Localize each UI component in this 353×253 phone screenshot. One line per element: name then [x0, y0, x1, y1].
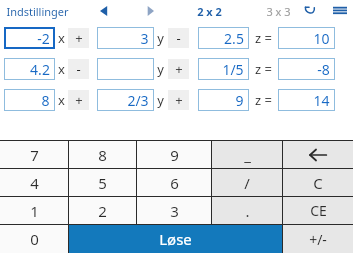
staticText: 0 [30, 229, 39, 249]
staticText: Indstillinger [6, 4, 69, 19]
button[interactable]: - [68, 59, 89, 79]
staticText: CE [310, 201, 327, 220]
staticText: + [75, 91, 83, 109]
staticText: -2 [37, 29, 50, 48]
staticText: y [157, 60, 164, 78]
button[interactable]: - [168, 28, 189, 48]
staticText: 14 [313, 91, 330, 110]
staticText: 3 x 3 [266, 4, 291, 19]
staticText: 2/3 [127, 91, 149, 110]
staticText: x [58, 91, 65, 109]
button[interactable]: 2.5 [198, 27, 249, 49]
staticText: 5 [98, 173, 107, 193]
button[interactable]: 2/3 [97, 89, 154, 111]
button[interactable]: Indstillinger [0, 2, 75, 21]
staticText: 8 [41, 91, 50, 110]
staticText: + [175, 91, 183, 109]
staticText: y [157, 29, 164, 47]
button[interactable]: 10 [278, 27, 335, 49]
button[interactable]: + [68, 90, 89, 110]
staticText: 4 [30, 173, 39, 193]
button[interactable]: . [212, 197, 282, 224]
staticText: _ [244, 145, 251, 165]
staticText: . [245, 201, 250, 221]
button[interactable]: Previous [91, 1, 117, 21]
button[interactable]: 8 [69, 141, 136, 168]
staticText: 1/5 [222, 60, 244, 79]
staticText: 6 [170, 173, 179, 193]
staticText: z = [255, 29, 272, 47]
staticText: 9 [170, 145, 179, 165]
button[interactable]: Undo [297, 1, 323, 21]
staticText: 2 [98, 201, 107, 221]
button[interactable]: Next [137, 1, 163, 21]
staticText: 1 [30, 201, 39, 221]
staticText: Løse [159, 229, 192, 249]
staticText: 4.2 [30, 60, 50, 79]
staticText: 3 [140, 29, 149, 48]
button[interactable]: 3 x 3 [260, 2, 297, 21]
staticText: y [157, 91, 164, 109]
staticText: C [313, 173, 323, 193]
button[interactable]: Løse [69, 225, 282, 253]
staticText: 8 [98, 145, 107, 165]
button[interactable]: / [212, 169, 282, 196]
staticText: z = [255, 91, 272, 109]
button[interactable] [97, 58, 154, 80]
staticText: -8 [317, 60, 330, 79]
button[interactable]: 1 [0, 197, 68, 224]
button[interactable]: 6 [137, 169, 211, 196]
button[interactable]: _ [212, 141, 282, 168]
staticText: 3 [170, 201, 179, 221]
button[interactable]: 2 x 2 [191, 2, 228, 21]
staticText: 10 [313, 29, 330, 48]
button[interactable]: 9 [137, 141, 211, 168]
staticText: - [76, 60, 81, 78]
staticText: x [58, 60, 65, 78]
button[interactable]: 0 [0, 225, 68, 253]
staticText: - [176, 29, 181, 47]
staticText: 2 x 2 [197, 4, 222, 19]
button[interactable]: 4 [0, 169, 68, 196]
staticText: z = [255, 60, 272, 78]
button[interactable]: 1/5 [198, 58, 249, 80]
button[interactable]: + [168, 59, 189, 79]
button[interactable]: 5 [69, 169, 136, 196]
button[interactable]: -2 [4, 27, 55, 49]
button[interactable]: 14 [278, 89, 335, 111]
button[interactable]: + [68, 28, 89, 48]
staticText: + [75, 29, 83, 47]
button[interactable]: 2 [69, 197, 136, 224]
button[interactable]: CE [283, 197, 353, 224]
button[interactable]: C [283, 169, 353, 196]
button[interactable]: 3 [97, 27, 154, 49]
button[interactable]: Backspace [283, 141, 353, 168]
staticText: 9 [235, 91, 244, 110]
staticText: 2.5 [224, 29, 244, 48]
button[interactable]: -8 [278, 58, 335, 80]
staticText: x [58, 29, 65, 47]
button[interactable]: 3 [137, 197, 211, 224]
staticText: 7 [30, 145, 39, 165]
button[interactable]: 9 [198, 89, 249, 111]
button[interactable]: Menu [327, 1, 353, 21]
button[interactable]: + [168, 90, 189, 110]
staticText: + [175, 60, 183, 78]
button[interactable]: +/- [283, 225, 353, 253]
button[interactable]: 8 [4, 89, 55, 111]
staticText: +/- [309, 230, 327, 249]
staticText: / [244, 173, 250, 193]
button[interactable]: 4.2 [4, 58, 55, 80]
button[interactable]: 7 [0, 141, 68, 168]
